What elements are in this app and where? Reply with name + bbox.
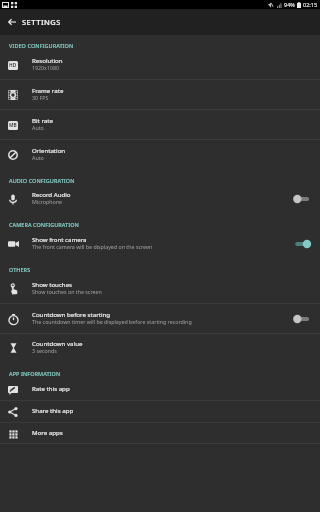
staticText: Countdown before starting (32, 310, 111, 318)
staticText: VIDEO CONFIGURATION (9, 42, 74, 49)
staticText: Frame rate (32, 86, 64, 94)
button[interactable]: Toggle (290, 189, 317, 209)
staticText: 94% (284, 1, 295, 8)
staticText: Share this app (32, 406, 74, 414)
staticText: Bit rate (32, 116, 53, 124)
button[interactable]: MB (0, 110, 320, 140)
button[interactable]: Toggle (290, 234, 317, 254)
button[interactable]: Countdown before starting (0, 304, 320, 334)
button[interactable]: Back (0, 9, 23, 35)
staticText: MB (9, 122, 17, 129)
staticText: 30 FPS (32, 94, 49, 101)
staticText: Auto (32, 124, 44, 131)
staticText: CAMERA CONFIGURATION (9, 221, 79, 228)
staticText: Show touches on the screen (32, 288, 102, 295)
button[interactable]: Toggle (290, 309, 317, 329)
staticText: OTHERS (9, 266, 31, 273)
button[interactable]: Show touches (0, 274, 320, 304)
staticText: AUDIO CONFIGURATION (9, 177, 75, 184)
staticText: The front camera will be displayed on th… (32, 243, 153, 250)
staticText: SETTINGS (22, 17, 61, 27)
staticText: Orientation (32, 146, 66, 154)
staticText: Rate this app (32, 384, 70, 392)
staticText: Countdown value (32, 339, 83, 347)
staticText: 3 seconds (32, 347, 57, 354)
staticText: Show front camera (32, 235, 87, 243)
button[interactable]: Frame rate (0, 80, 320, 110)
button[interactable]: Countdown value (0, 333, 320, 363)
button[interactable]: Share this app (0, 401, 320, 422)
staticText: 02:15 (303, 1, 318, 8)
staticText: HD (9, 62, 17, 69)
staticText: Resolution (32, 56, 63, 64)
staticText: The countdown timer will be displayed be… (32, 318, 192, 325)
staticText: Record Audio (32, 190, 71, 198)
staticText: Microphone (32, 198, 62, 205)
button[interactable]: Record Audio (0, 184, 320, 214)
button[interactable]: More apps (0, 423, 320, 444)
button[interactable]: Orientation (0, 140, 320, 170)
button[interactable]: Show front camera (0, 229, 320, 259)
button[interactable]: HD (0, 50, 320, 80)
staticText: Auto (32, 154, 44, 161)
staticText: 1920x1080 (32, 64, 60, 71)
staticText: Show touches (32, 280, 73, 288)
staticText: More apps (32, 428, 63, 436)
staticText: APP INFORMATION (9, 370, 61, 377)
button[interactable]: Rate this app (0, 379, 320, 400)
